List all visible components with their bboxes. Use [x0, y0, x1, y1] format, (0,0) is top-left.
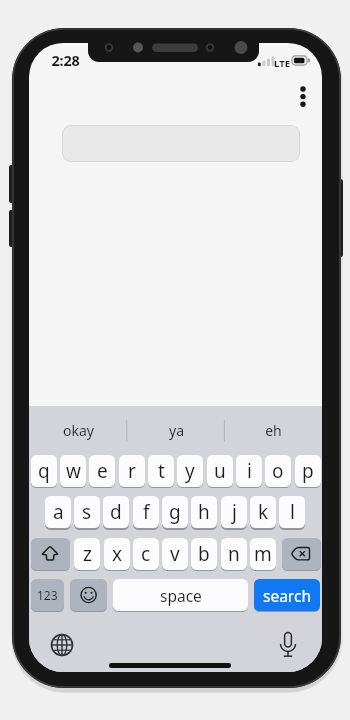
staticText: a	[53, 499, 64, 525]
button[interactable]: eh	[224, 406, 322, 455]
staticText: o	[272, 458, 284, 484]
staticText: y	[185, 458, 195, 484]
button[interactable]: x	[104, 538, 130, 570]
button[interactable]	[48, 631, 76, 659]
button[interactable]: search	[254, 579, 320, 611]
staticText: g	[169, 499, 181, 525]
staticText: f	[143, 499, 150, 525]
button[interactable]	[62, 125, 300, 162]
staticText: z	[83, 541, 92, 567]
button[interactable]: ya	[127, 406, 225, 455]
button[interactable]: s	[74, 496, 100, 528]
staticText: 2:28	[51, 50, 80, 70]
staticText: n	[228, 541, 240, 567]
button[interactable]: t	[148, 455, 174, 487]
staticText: 123	[37, 587, 58, 603]
button[interactable]: a	[45, 496, 71, 528]
staticText: okay	[63, 421, 94, 440]
staticText: t	[158, 458, 165, 484]
button[interactable]: y	[177, 455, 203, 487]
button[interactable]	[282, 538, 321, 570]
button[interactable]: v	[162, 538, 188, 570]
staticText: u	[214, 458, 226, 484]
button[interactable]: z	[74, 538, 100, 570]
staticText: search	[263, 585, 311, 606]
staticText: k	[258, 499, 269, 525]
button[interactable]: o	[265, 455, 291, 487]
button[interactable]	[295, 83, 311, 111]
staticText: p	[302, 458, 314, 484]
button[interactable]	[31, 538, 70, 570]
button[interactable]: space	[113, 579, 248, 611]
staticText: q	[38, 458, 50, 484]
staticText: x	[112, 541, 123, 567]
button[interactable]: i	[236, 455, 262, 487]
staticText: r	[128, 458, 136, 484]
button[interactable]: f	[133, 496, 159, 528]
button[interactable]: w	[60, 455, 86, 487]
staticText: c	[141, 541, 151, 567]
button[interactable]: k	[250, 496, 276, 528]
staticText: b	[198, 541, 210, 567]
button[interactable]	[274, 631, 302, 659]
button[interactable]: g	[162, 496, 188, 528]
staticText: m	[254, 541, 272, 567]
button[interactable]	[70, 579, 107, 611]
staticText: j	[232, 499, 237, 525]
staticText: h	[198, 499, 210, 525]
button[interactable]: j	[221, 496, 247, 528]
staticText: i	[247, 458, 252, 484]
staticText: e	[97, 458, 108, 484]
button[interactable]: h	[191, 496, 217, 528]
button[interactable]: m	[250, 538, 276, 570]
staticText: w	[66, 458, 81, 484]
button[interactable]: 123	[31, 579, 64, 611]
button[interactable]: e	[89, 455, 115, 487]
button[interactable]: okay	[29, 406, 127, 455]
button[interactable]: q	[31, 455, 57, 487]
button[interactable]: p	[295, 455, 321, 487]
staticText: space	[160, 585, 202, 606]
staticText: l	[290, 499, 295, 525]
staticText: LTE	[274, 57, 290, 70]
button[interactable]: b	[191, 538, 217, 570]
staticText: s	[82, 499, 92, 525]
staticText: v	[170, 541, 180, 567]
staticText: eh	[265, 421, 282, 440]
button[interactable]: r	[119, 455, 145, 487]
button[interactable]: c	[133, 538, 159, 570]
button[interactable]: l	[279, 496, 305, 528]
staticText: d	[110, 499, 122, 525]
staticText: ya	[169, 421, 184, 440]
button[interactable]: n	[221, 538, 247, 570]
button[interactable]: u	[207, 455, 233, 487]
button[interactable]: d	[103, 496, 129, 528]
